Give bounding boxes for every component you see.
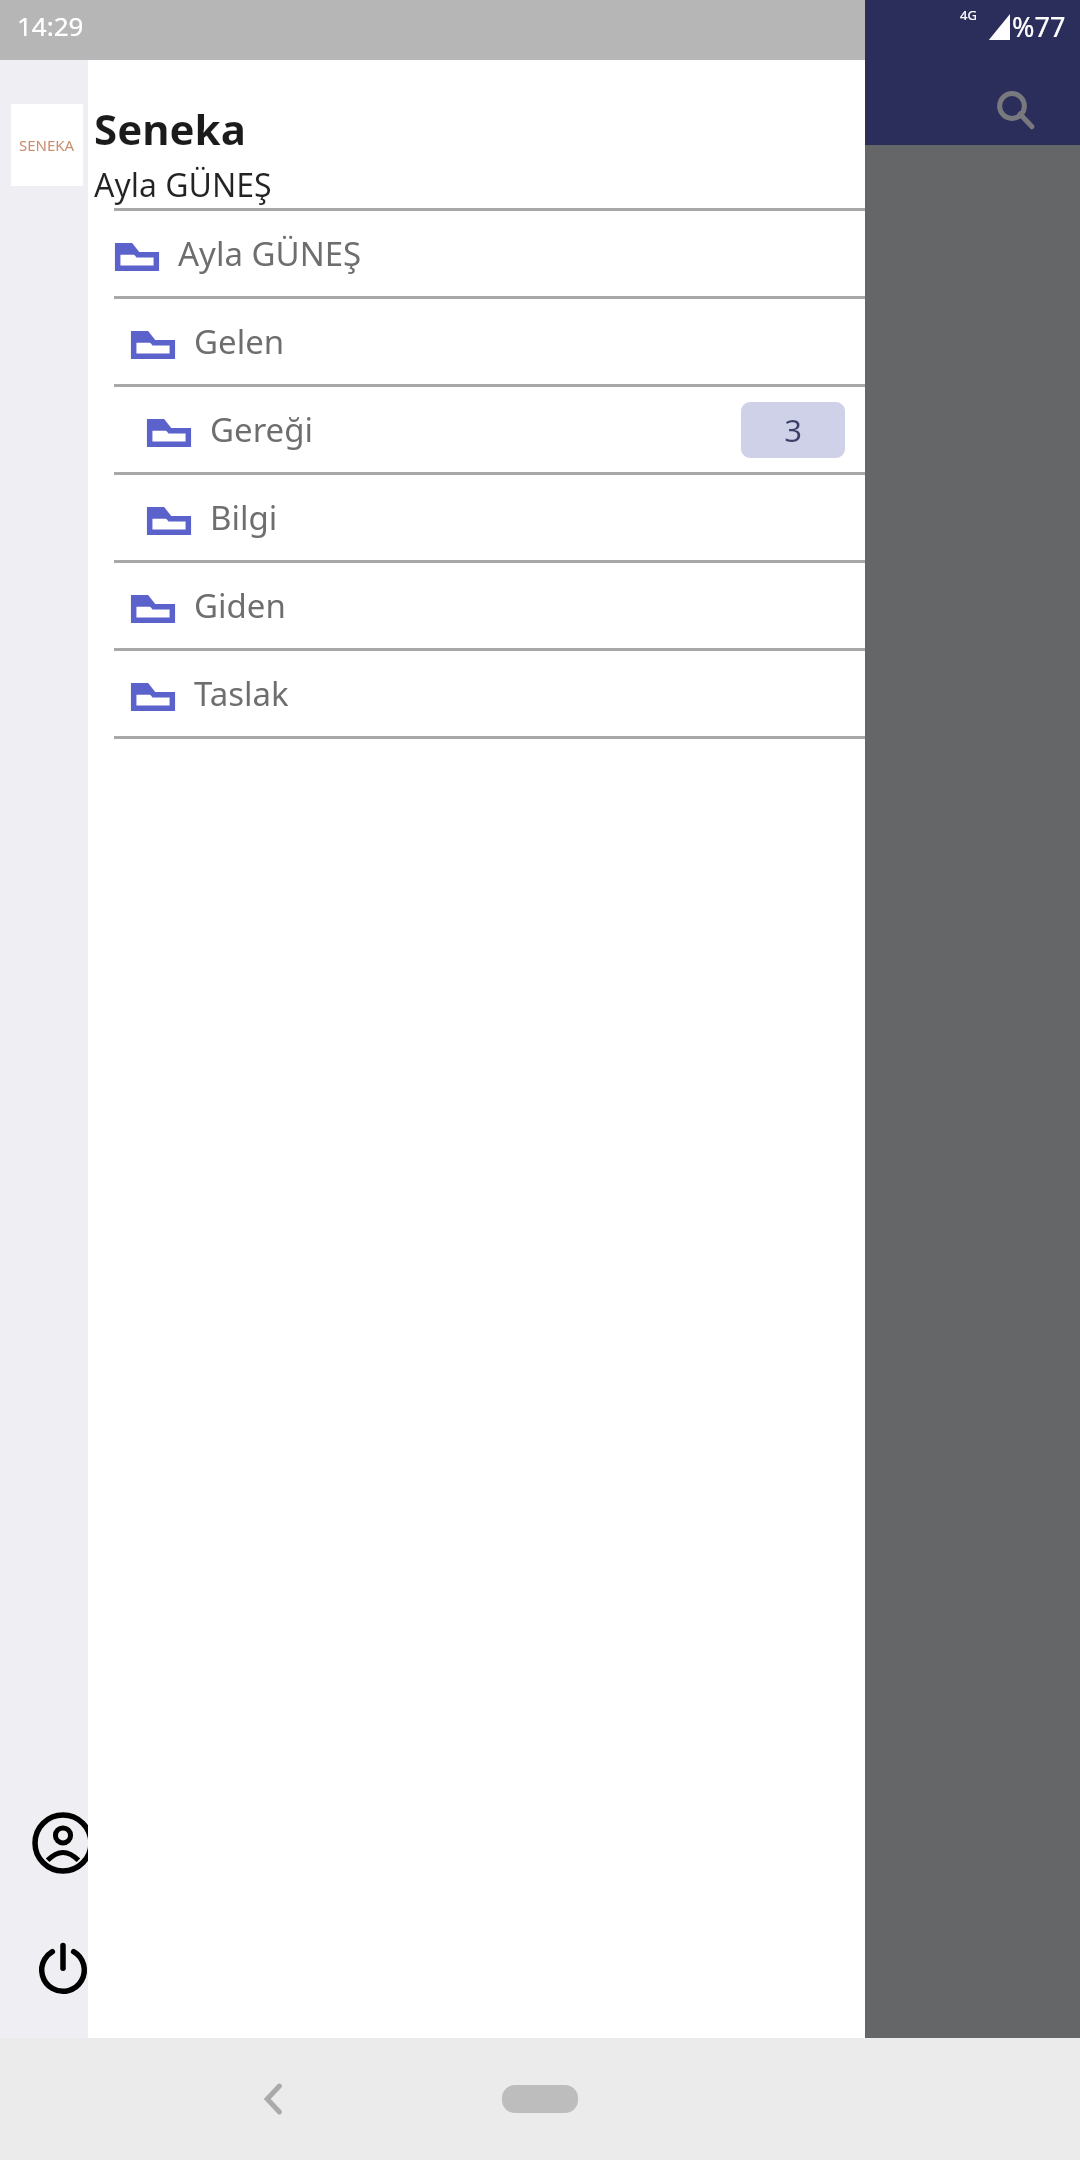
staticText: 4G: [960, 6, 977, 24]
staticText: Bilgi: [210, 495, 278, 540]
button[interactable]: Gelen: [88, 299, 865, 384]
staticText: SENEKA: [19, 135, 75, 155]
staticText: Taslak: [194, 671, 289, 716]
button[interactable]: Home: [490, 2069, 590, 2129]
button[interactable]: Back: [232, 2057, 316, 2141]
staticText: Gelen: [194, 319, 285, 364]
button[interactable]: Account: [18, 1798, 108, 1888]
staticText: Gereği: [210, 407, 314, 452]
button[interactable]: Giden: [88, 563, 865, 648]
button[interactable]: Bilgi: [88, 475, 865, 560]
button[interactable]: Taslak: [88, 651, 865, 736]
staticText: Ayla GÜNEŞ: [178, 231, 362, 276]
staticText: Giden: [194, 583, 286, 628]
button[interactable]: Ayla GÜNEŞ: [88, 211, 865, 296]
staticText: %77: [1012, 8, 1066, 45]
staticText: 14:29: [17, 8, 84, 43]
staticText: 3: [784, 409, 802, 451]
staticText: Seneka: [94, 100, 246, 157]
button[interactable]: Gereği: [88, 387, 865, 472]
button[interactable]: Power: [18, 1922, 108, 2012]
staticText: Ayla GÜNEŞ: [94, 163, 272, 207]
button[interactable]: Search: [980, 74, 1052, 146]
